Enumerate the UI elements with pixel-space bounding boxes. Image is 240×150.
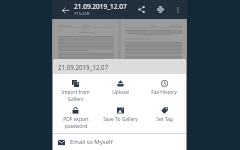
- button[interactable]: Back: [58, 3, 72, 17]
- staticText: PDF export password: [63, 116, 89, 129]
- button[interactable]: Import from Gallery: [53, 74, 98, 101]
- button[interactable]: Upload: [98, 74, 142, 101]
- staticText: 715.41K: [74, 11, 90, 17]
- staticText: Import from Gallery: [61, 89, 90, 101]
- staticText: Fax History: [151, 89, 177, 96]
- staticText: Save To Gallery: [103, 116, 138, 123]
- button[interactable]: Set Tag: [142, 101, 186, 129]
- button[interactable]: Save To Gallery: [98, 101, 142, 129]
- button[interactable]: PDF export password: [53, 101, 98, 129]
- button[interactable]: Print: [151, 0, 170, 19]
- staticText: Upload: [112, 89, 129, 96]
- staticText: 21.09.2019_12.07: [58, 63, 109, 71]
- staticText: Set Tag: [156, 116, 173, 123]
- staticText: Email to Myself: [70, 138, 113, 146]
- button[interactable]: Share: [132, 0, 151, 19]
- staticText: 21.09.2019_12.07: [74, 2, 127, 11]
- button[interactable]: More options: [170, 2, 186, 18]
- button[interactable]: Fax History: [142, 74, 186, 101]
- button[interactable]: Email to Myself: [53, 134, 186, 150]
